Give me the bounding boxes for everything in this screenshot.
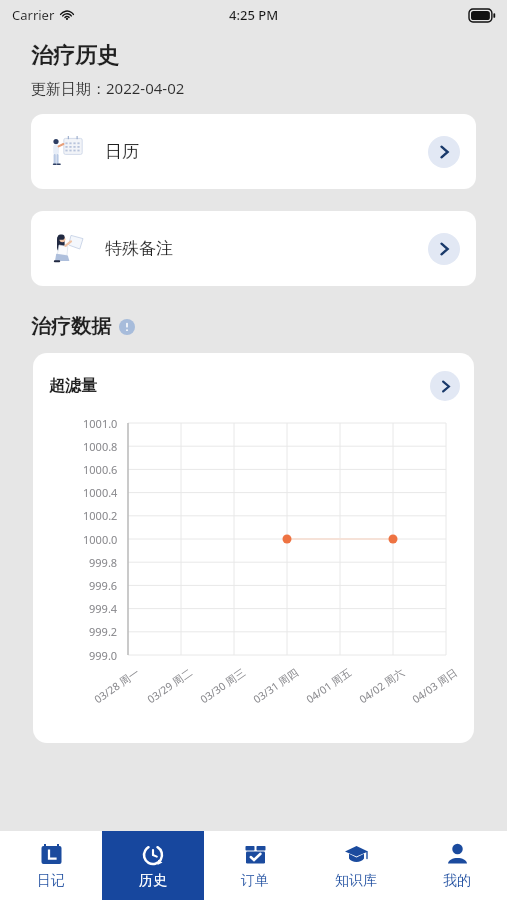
staticText: 历史 (139, 872, 167, 890)
button[interactable]: 日记 (0, 831, 102, 900)
staticText: 知识库 (335, 872, 377, 890)
button[interactable]: 订单 (204, 831, 305, 900)
staticText: 我的 (443, 872, 471, 890)
button[interactable]: 历史 (102, 831, 204, 900)
staticText: 4:25 PM (229, 6, 279, 24)
staticText: 日历 (105, 141, 139, 162)
button[interactable]: 知识库 (305, 831, 406, 900)
staticText: 日记 (37, 872, 65, 890)
staticText: Carrier (12, 6, 55, 24)
staticText: 订单 (241, 872, 269, 890)
button[interactable]: 日历 (31, 114, 476, 189)
button[interactable]: Open (430, 371, 460, 401)
staticText: 超滤量 (49, 376, 97, 396)
button[interactable]: 我的 (406, 831, 507, 900)
button[interactable]: 特殊备注 (31, 211, 476, 286)
button[interactable]: Info (119, 319, 135, 335)
button[interactable]: Open (428, 233, 460, 265)
staticText: 治疗历史 (31, 42, 119, 70)
staticText: 特殊备注 (105, 238, 173, 259)
button[interactable]: Open (428, 136, 460, 168)
staticText: 更新日期：2022-04-02 (31, 78, 185, 98)
staticText: 治疗数据 (31, 314, 111, 339)
